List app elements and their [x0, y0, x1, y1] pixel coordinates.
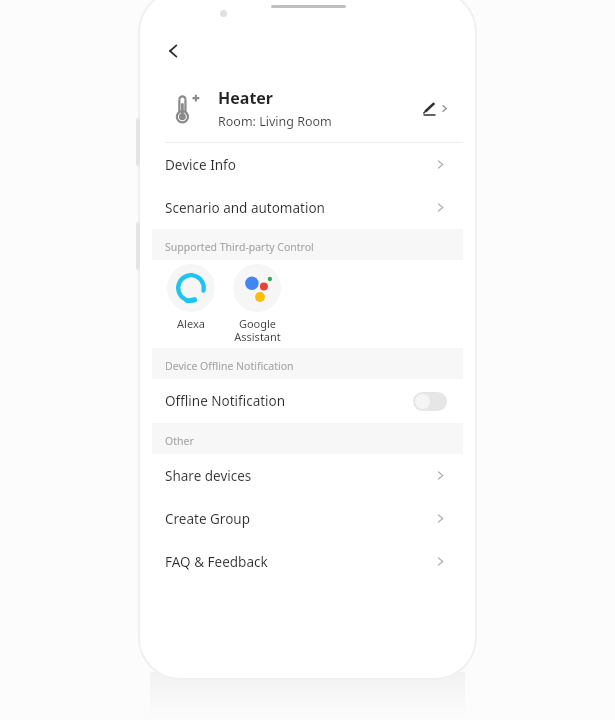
button[interactable]: Back [152, 28, 463, 74]
button[interactable]: Alexa [165, 260, 217, 331]
button[interactable]: Heater [152, 74, 463, 142]
staticText: Share devices [165, 467, 435, 485]
staticText: Room: Living Room [218, 113, 332, 130]
staticText: Scenario and automation [165, 199, 435, 217]
staticText: Alexa [177, 316, 205, 331]
staticText: Offline Notification [165, 392, 413, 410]
button[interactable]: Device Info [152, 143, 463, 186]
staticText: Heater [218, 87, 274, 109]
button[interactable]: Share devices [152, 454, 463, 497]
staticText: Device Offline Notification [165, 359, 294, 373]
staticText: Supported Third-party Control [165, 240, 314, 254]
staticText: Google Assistant [234, 316, 281, 344]
button[interactable]: Offline Notification [152, 379, 463, 423]
staticText: FAQ & Feedback [165, 553, 435, 571]
button[interactable]: Google Assistant [231, 260, 283, 344]
button[interactable]: Offline Notification toggle [413, 392, 447, 411]
staticText: Device Info [165, 156, 435, 174]
button[interactable]: Scenario and automation [152, 186, 463, 229]
button[interactable]: Edit device [413, 86, 457, 130]
button[interactable]: FAQ & Feedback [152, 540, 463, 583]
button[interactable]: Create Group [152, 497, 463, 540]
staticText: Create Group [165, 510, 435, 528]
staticText: Other [165, 434, 194, 448]
